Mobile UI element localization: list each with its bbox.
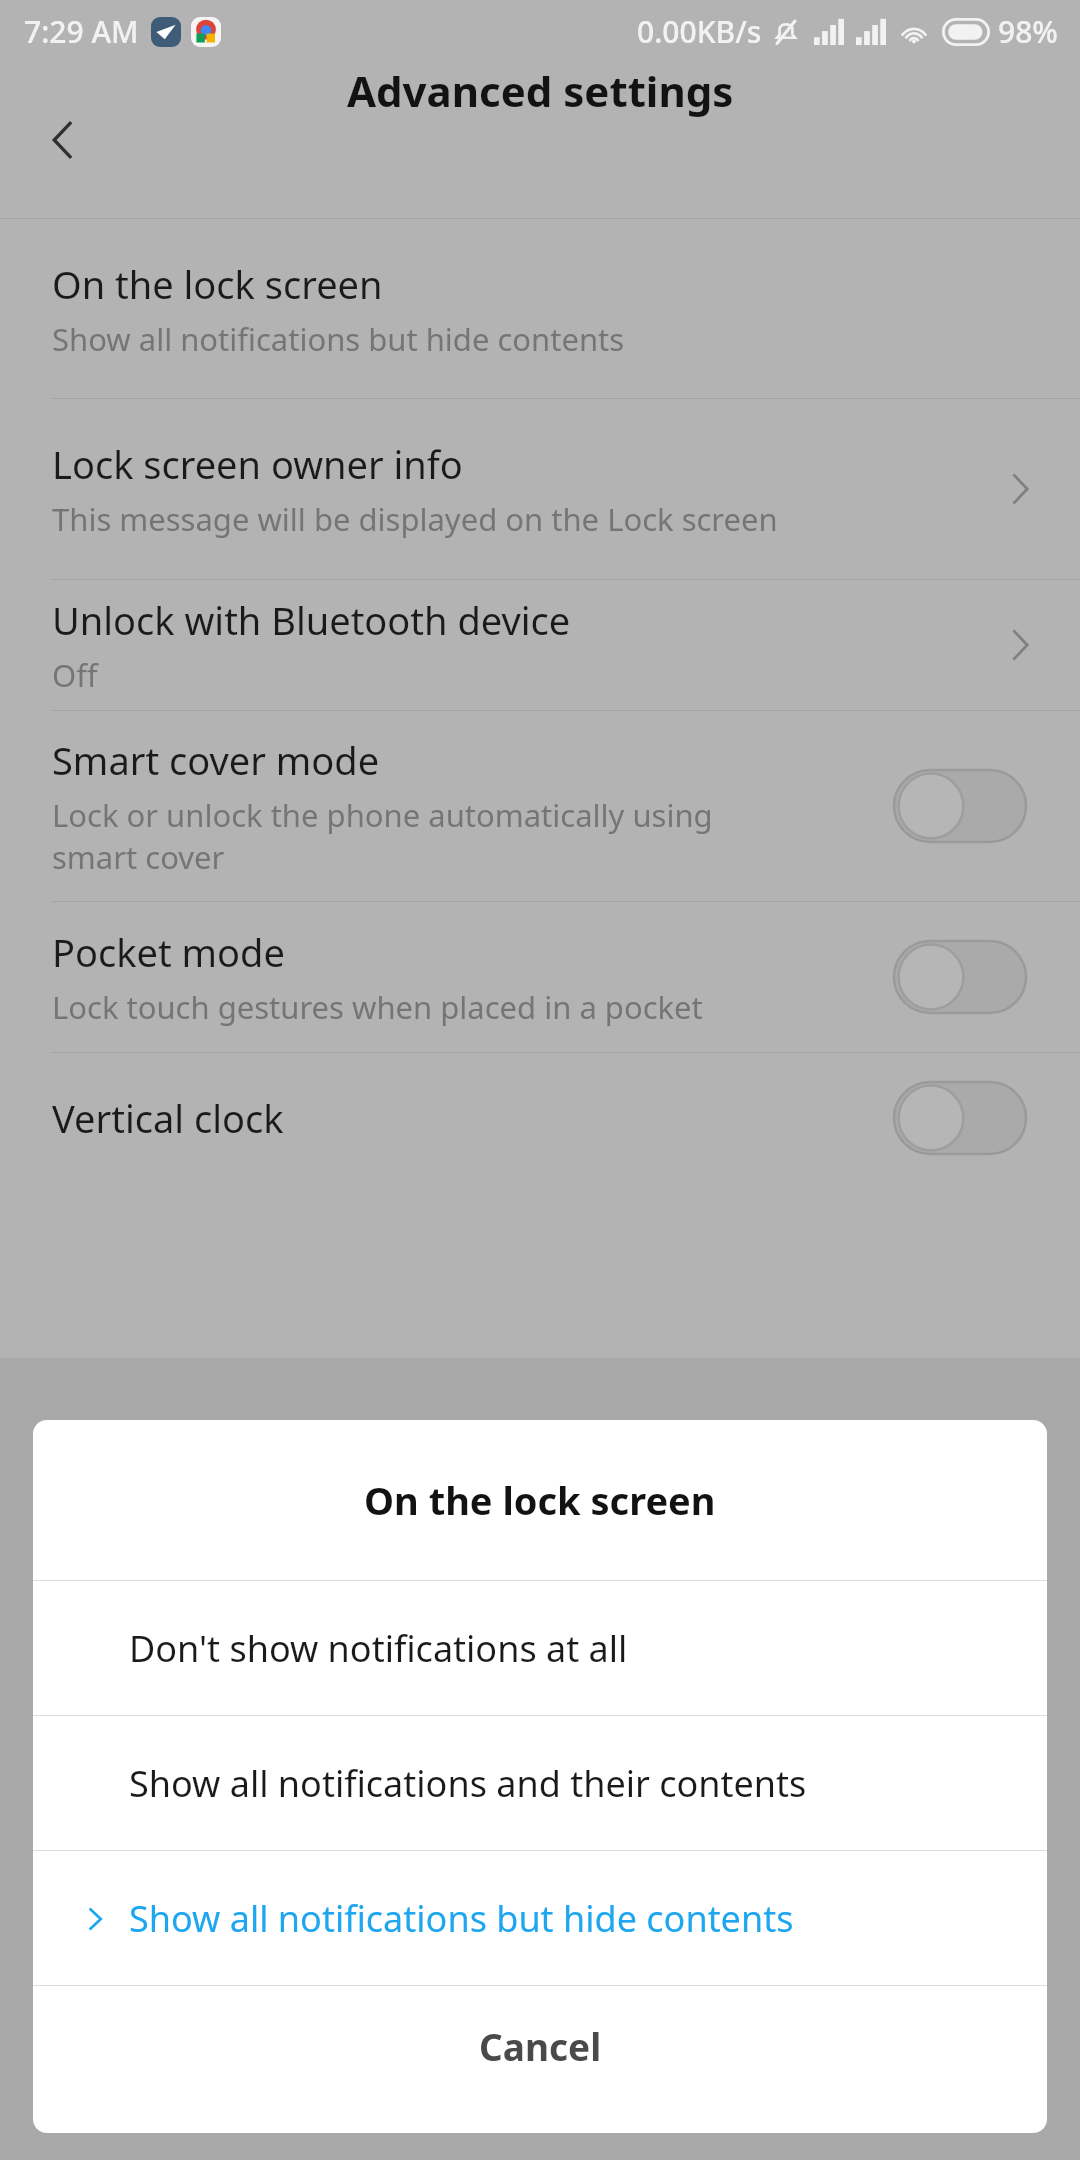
staticText: On the lock screen <box>364 1474 716 1526</box>
staticText: 0.00KB/s <box>637 11 762 52</box>
staticText: Show all notifications and their content… <box>129 1759 807 1808</box>
staticText: On the lock screen <box>52 258 383 310</box>
button[interactable]: Toggle Vertical clock <box>894 1082 1026 1154</box>
button[interactable]: Vertical clock <box>0 1053 1080 1183</box>
button[interactable]: Toggle Pocket mode <box>894 941 1026 1013</box>
button[interactable]: Smart cover mode <box>0 711 1080 901</box>
button[interactable]: On the lock screen <box>0 219 1080 398</box>
staticText: Pocket mode <box>52 926 285 978</box>
staticText: Lock touch gestures when placed in a poc… <box>52 986 703 1028</box>
staticText: Smart cover mode <box>52 734 380 786</box>
button[interactable]: Pocket mode <box>0 902 1080 1052</box>
staticText: Vertical clock <box>52 1092 284 1144</box>
button[interactable]: Lock screen owner info <box>0 399 1080 579</box>
staticText: Don't show notifications at all <box>129 1624 628 1673</box>
staticText: Off <box>52 654 98 696</box>
staticText: Advanced settings <box>347 62 734 119</box>
button[interactable]: Toggle Smart cover mode <box>894 770 1026 842</box>
staticText: Lock screen owner info <box>52 438 463 490</box>
button[interactable]: Show all notifications and their content… <box>33 1716 1047 1850</box>
button[interactable]: Back <box>20 97 106 183</box>
staticText: 98% <box>998 11 1058 52</box>
staticText: Lock or unlock the phone automatically u… <box>52 794 713 878</box>
staticText: Unlock with Bluetooth device <box>52 594 571 646</box>
button[interactable]: Cancel <box>33 1986 1047 2133</box>
staticText: Show all notifications but hide contents <box>129 1894 794 1943</box>
button[interactable]: Don't show notifications at all <box>33 1581 1047 1715</box>
button[interactable]: Show all notifications but hide contents <box>33 1851 1047 1985</box>
staticText: Cancel <box>479 2021 602 2071</box>
staticText: Show all notifications but hide contents <box>52 318 625 360</box>
button[interactable]: Unlock with Bluetooth device <box>0 580 1080 710</box>
staticText: This message will be displayed on the Lo… <box>52 498 778 540</box>
staticText: 7:29 AM <box>24 11 139 52</box>
